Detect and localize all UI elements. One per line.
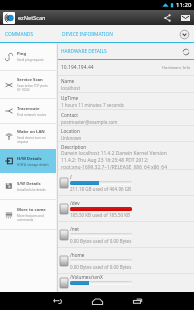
staticText: 0.00 Bytes used of 0.00 Bytes	[70, 264, 132, 270]
staticText: Darwin localhost 11.4.2 Darwin Kernel Ve…	[61, 150, 167, 157]
button[interactable]: Home	[77, 292, 117, 310]
button[interactable]: Refresh	[178, 44, 194, 60]
staticText: Service Scan	[17, 77, 43, 83]
staticText: /net	[70, 226, 79, 232]
button[interactable]: Email	[176, 10, 194, 25]
staticText: /home	[70, 252, 85, 258]
staticText: HARDWARE DETAILS	[61, 48, 107, 55]
staticText: ezNetScan	[18, 14, 46, 22]
staticText: root:xnu-1699.32.7~1/RELEASE_X86_64 x86_…	[61, 164, 167, 169]
staticText: Installed s/w details	[17, 188, 46, 192]
staticText: 11.4.2: Thu Aug 23 16:25:48 PDT 2012;	[61, 157, 149, 164]
staticText: Send device turn on	[17, 136, 46, 140]
staticText: /	[70, 174, 72, 180]
staticText: request	[17, 140, 29, 144]
button[interactable]: Traceroute	[0, 99, 56, 123]
button[interactable]: Recents	[117, 292, 157, 310]
staticText: S/W Details	[17, 181, 41, 187]
staticText: postmaster@example.com	[61, 119, 118, 125]
staticText: 185.50 KB used of 185.50 KB	[70, 212, 130, 218]
button[interactable]: H/W Details	[0, 149, 56, 173]
staticText: More features and	[17, 214, 44, 218]
staticText: 10.194.194.44	[61, 64, 94, 71]
staticText: 211.18 GB used of 464.96 GB	[70, 186, 131, 192]
staticText: 11:20	[176, 1, 192, 9]
staticText: Location	[61, 128, 80, 134]
staticText: 0.00 Bytes used of 0.00 Bytes	[70, 238, 132, 244]
staticText: Ping	[17, 51, 27, 57]
button[interactable]: COMMANDS	[0, 25, 58, 43]
staticText: localhost	[61, 85, 81, 91]
staticText: commands	[17, 218, 34, 222]
staticText: UpTime	[61, 95, 79, 101]
button[interactable]: More to come	[0, 200, 56, 229]
button[interactable]: More options	[174, 25, 194, 43]
staticText: (0~1024)	[17, 88, 30, 92]
staticText: DEVICE INFORMATION	[62, 31, 113, 38]
staticText: Name	[61, 78, 75, 84]
button[interactable]: Share	[158, 10, 176, 25]
staticText: 1 hours 11 minutes 7 seconds	[61, 102, 124, 108]
staticText: Unknown	[61, 135, 82, 141]
button[interactable]: Ping	[0, 43, 56, 70]
staticText: Send ping request	[17, 58, 44, 62]
staticText: Find network routes	[17, 113, 47, 117]
staticText: /dev	[70, 200, 80, 206]
button[interactable]: Wake on LAN	[0, 124, 56, 149]
button[interactable]: Back	[37, 292, 77, 310]
button[interactable]: S/W Details	[0, 173, 56, 199]
staticText: Wake on LAN	[17, 129, 45, 135]
staticText: Hardware Info	[162, 65, 191, 71]
staticText: More to come	[17, 207, 46, 213]
staticText: H/W & storage details	[17, 163, 49, 167]
button[interactable]: Service Scan	[0, 71, 56, 98]
button[interactable]: DEVICE INFORMATION	[58, 25, 174, 43]
staticText: Description	[61, 144, 87, 150]
staticText: H/W Details	[17, 156, 42, 162]
staticText: Contact	[61, 112, 78, 118]
staticText: /Volumes/svnX	[70, 274, 103, 280]
staticText: Scan active TCP ports	[17, 84, 48, 88]
staticText: Traceroute	[17, 106, 40, 112]
staticText: COMMANDS	[5, 31, 34, 38]
